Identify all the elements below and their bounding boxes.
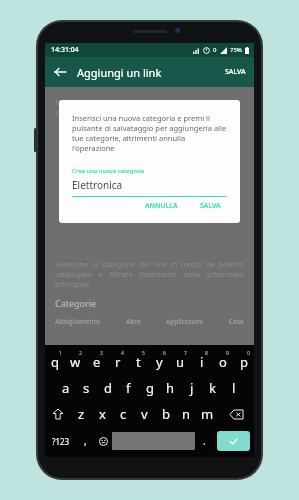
staticText: d — [104, 379, 112, 397]
staticText: l — [232, 379, 236, 397]
staticText: r — [115, 353, 121, 371]
button[interactable]: SALVA — [194, 197, 227, 215]
button[interactable]: u — [170, 349, 191, 375]
button[interactable]: o — [212, 349, 233, 375]
staticText: , — [84, 434, 87, 448]
staticText: Altro — [126, 317, 141, 326]
button[interactable]: ?123 — [45, 427, 76, 455]
button[interactable]: n — [176, 401, 197, 427]
staticText: 3 — [100, 350, 103, 357]
staticText: u — [176, 353, 185, 371]
staticText: m — [201, 405, 214, 423]
button[interactable]: Backspace — [218, 401, 254, 427]
button[interactable]: a — [55, 375, 76, 401]
staticText: v — [141, 405, 148, 423]
button[interactable]: h — [160, 375, 181, 401]
button[interactable]: t — [128, 349, 149, 375]
staticText: 2 — [79, 350, 82, 357]
staticText: Categorie — [55, 297, 97, 309]
staticText: ?123 — [52, 436, 70, 447]
staticText: Crea una nuova categoria — [72, 167, 145, 175]
staticText: x — [99, 405, 106, 423]
button[interactable]: y — [149, 349, 170, 375]
button[interactable]: b — [155, 401, 176, 427]
button[interactable]: SALVA — [222, 64, 249, 80]
staticText: ANNULLA — [145, 201, 178, 211]
staticText: Inserisci il nome, la descrizione e l'UR… — [55, 97, 244, 117]
staticText: t — [136, 353, 141, 371]
staticText: f — [126, 379, 131, 397]
staticText: 14:31:04 — [51, 45, 79, 55]
button[interactable]: g — [139, 375, 160, 401]
button[interactable]: q — [45, 349, 65, 375]
button[interactable]: x — [92, 401, 113, 427]
staticText: c — [120, 405, 127, 423]
button[interactable]: Emoji — [94, 427, 112, 455]
button[interactable]: s — [76, 375, 97, 401]
staticText: y — [156, 353, 163, 371]
button[interactable]: w — [65, 349, 86, 375]
button[interactable]: j — [181, 375, 202, 401]
staticText: 75% — [230, 46, 242, 54]
button[interactable]: m — [197, 401, 218, 427]
button[interactable]: z — [71, 401, 92, 427]
button[interactable]: f — [118, 375, 139, 401]
staticText: s — [83, 379, 90, 397]
staticText: e — [93, 353, 101, 371]
staticText: i — [200, 353, 204, 371]
staticText: 4 — [121, 350, 124, 357]
button[interactable]: v — [134, 401, 155, 427]
staticText: Casa — [229, 317, 244, 326]
button[interactable]: Enter — [217, 431, 250, 451]
button[interactable]: ANNULLA — [139, 197, 184, 215]
staticText: g — [146, 379, 154, 397]
staticText: 5 — [142, 350, 145, 357]
staticText: 7 — [184, 350, 187, 357]
staticText: n — [182, 405, 191, 423]
staticText: q — [51, 353, 59, 371]
staticText: h — [166, 379, 175, 397]
staticText: Aggiungi un link — [77, 65, 162, 80]
button[interactable]: , — [76, 427, 94, 455]
staticText: Inserisci una nuova categoria e premi il… — [72, 113, 227, 153]
staticText: 9 — [226, 350, 229, 357]
staticText: p — [240, 353, 248, 371]
button[interactable]: c — [113, 401, 134, 427]
staticText: Abbigliamento — [55, 317, 100, 326]
staticText: 0 — [213, 46, 217, 54]
staticText: z — [78, 405, 85, 423]
staticText: k — [209, 379, 216, 397]
staticText: 1 — [59, 350, 62, 357]
staticText: b — [162, 405, 170, 423]
button[interactable]: p — [233, 349, 254, 375]
staticText: 8 — [205, 350, 208, 357]
staticText: Seleziona la categoria del link in modo … — [55, 259, 244, 289]
staticText: Applicazioni — [166, 317, 203, 326]
button[interactable]: d — [97, 375, 118, 401]
staticText: 6 — [163, 350, 166, 357]
button[interactable]: k — [202, 375, 223, 401]
staticText: a — [62, 379, 70, 397]
staticText: w — [70, 353, 81, 371]
staticText: o — [219, 353, 227, 371]
button[interactable]: l — [223, 375, 244, 401]
staticText: j — [190, 379, 194, 397]
button[interactable]: r — [107, 349, 128, 375]
button[interactable]: i — [191, 349, 212, 375]
staticText: Elettronica — [72, 178, 123, 192]
button[interactable]: Back — [49, 61, 71, 83]
staticText: SALVA — [225, 67, 246, 77]
staticText: 0 — [247, 350, 250, 357]
button[interactable]: Shift — [45, 401, 71, 427]
button[interactable]: . — [195, 427, 213, 455]
button[interactable]: e — [86, 349, 107, 375]
staticText: . — [203, 434, 206, 448]
staticText: SALVA — [200, 201, 221, 211]
